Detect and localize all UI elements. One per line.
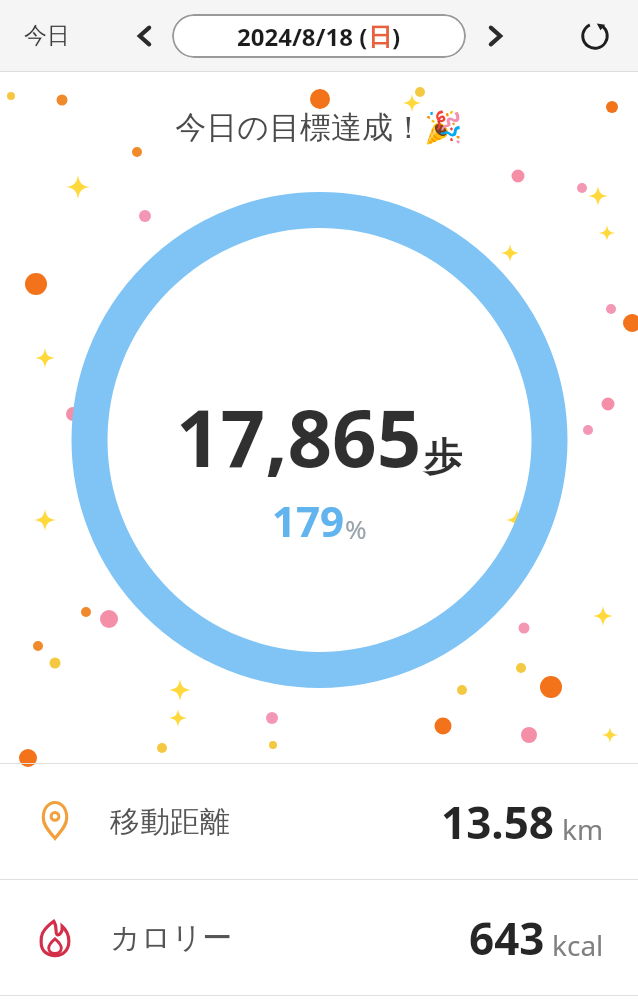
staticText: 今日 <box>24 21 70 50</box>
staticText: カロリー <box>110 919 233 957</box>
button[interactable]: Previous day <box>118 9 172 63</box>
staticText: km <box>562 810 604 848</box>
button[interactable]: 今日 <box>14 15 80 56</box>
staticText: 歩 <box>424 433 462 481</box>
staticText: 今日の目標達成！🎉 <box>175 108 463 147</box>
staticText: ) <box>392 20 401 53</box>
staticText: % <box>345 511 367 546</box>
button[interactable]: 2024/8/18 ( <box>172 14 466 58</box>
staticText: 17,865 <box>176 384 422 490</box>
staticText: 移動距離 <box>110 803 230 841</box>
button[interactable]: 移動距離 <box>0 764 638 879</box>
staticText: 13.58 <box>441 792 555 852</box>
button[interactable]: Refresh <box>568 9 622 63</box>
button[interactable]: Next day <box>468 9 522 63</box>
staticText: kcal <box>552 926 604 964</box>
staticText: 643 <box>469 908 545 968</box>
staticText: 2024/8/18 ( <box>237 20 368 53</box>
staticText: 179 <box>272 492 345 549</box>
staticText: 日 <box>368 22 392 52</box>
button[interactable]: カロリー <box>0 880 638 995</box>
